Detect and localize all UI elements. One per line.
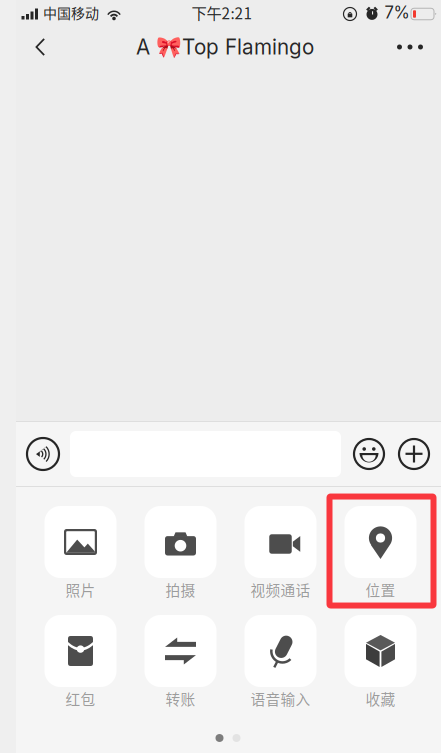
staticText: 拍摄 [165,579,195,600]
staticText: 下午2:21 [191,1,252,24]
staticText: 照片 [65,579,95,600]
staticText: 视频通话 [250,579,310,600]
staticText: 中国移动 [43,2,99,23]
staticText: 收藏 [365,688,395,709]
staticText: 7% [384,2,409,23]
staticText: A 🎀Top Flamingo [136,34,314,60]
button[interactable]: More [16,0,441,72]
button[interactable]: Emoji [16,0,441,753]
staticText: 转账 [165,688,195,709]
button[interactable]: 视频通话 [230,506,330,608]
staticText: 语音输入 [250,688,310,709]
button[interactable]: Back [16,0,441,72]
staticText: 红包 [65,688,95,709]
button[interactable]: Voice input [16,0,441,753]
staticText: 位置 [365,579,395,600]
button[interactable]: More options [16,0,441,753]
button[interactable]: 语音输入 [230,615,330,717]
button[interactable]: 收藏 [330,615,430,717]
button[interactable]: 红包 [30,615,130,717]
button[interactable]: 拍摄 [130,506,230,608]
button[interactable]: 转账 [130,615,230,717]
button[interactable]: 照片 [30,506,130,608]
button[interactable]: 位置 [330,506,430,608]
